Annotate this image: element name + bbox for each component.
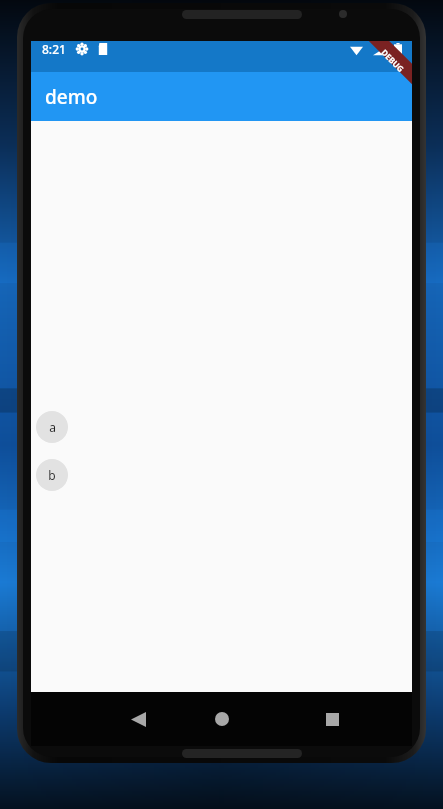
button[interactable]: a (36, 411, 68, 443)
staticText: DEBUG (379, 47, 407, 74)
button[interactable]: Recent apps (293, 692, 371, 746)
button[interactable]: b (36, 459, 68, 491)
staticText: 8:21 (42, 41, 66, 57)
staticText: demo (45, 84, 98, 110)
staticText: a (49, 419, 56, 435)
button[interactable]: Back (99, 692, 177, 746)
staticText: b (48, 467, 56, 483)
button[interactable]: Home (183, 692, 261, 746)
